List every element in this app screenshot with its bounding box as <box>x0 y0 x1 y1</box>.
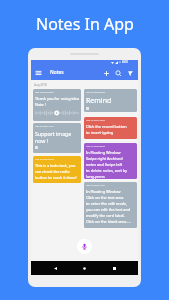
staticText: Notes <box>50 69 64 76</box>
button[interactable]: Menu <box>34 68 43 77</box>
staticText: Aug 2018 <box>34 83 47 87</box>
button[interactable]: Aug 27 2018 09:44 <box>33 156 81 183</box>
staticText: Aug 26 2018 17:31 <box>86 184 105 187</box>
staticText: In Floating Window Swipe right Archived … <box>86 150 127 179</box>
staticText: 8:00 <box>122 60 128 64</box>
button[interactable]: Aug 27 2018 08:00 <box>84 143 137 179</box>
staticText: Notes In App <box>36 13 134 35</box>
button[interactable]: Aug 28 2018 18:09 <box>84 117 137 139</box>
button[interactable]: Back <box>50 263 61 274</box>
button[interactable]: Aug 26 2018 17:31 <box>84 182 137 228</box>
staticText: Aug 29 2018 22:00 <box>86 91 105 94</box>
staticText: Aug 27 2018 08:00 <box>86 145 105 148</box>
button[interactable]: Record voice note <box>77 239 92 254</box>
staticText: In Floating Window Click on the text are… <box>86 189 131 224</box>
staticText: Remind <box>86 96 112 106</box>
button[interactable]: Home <box>79 263 90 274</box>
staticText: Thank you for using idea Note ! <box>35 96 80 107</box>
staticText: Aug 30 2018 08:01 <box>35 91 54 94</box>
staticText: Click the record button to insert typing <box>86 124 127 135</box>
button[interactable]: Recents <box>109 263 120 274</box>
staticText: Aug 28 2018 11:21 <box>35 125 54 128</box>
button[interactable]: Aug 28 2018 11:21 <box>33 123 81 153</box>
button[interactable]: Add note <box>102 69 111 78</box>
button[interactable]: Sort <box>126 69 135 78</box>
staticText: Aug 27 2018 09:44 <box>35 158 54 161</box>
staticText: Aug 28 2018 18:09 <box>86 119 105 122</box>
staticText: This is a todo task, you can check the r… <box>35 163 77 180</box>
button[interactable]: Aug 30 2018 08:01 <box>33 89 81 121</box>
staticText: Support image now ! <box>35 130 72 144</box>
button[interactable]: Search <box>114 69 123 78</box>
button[interactable]: Aug 29 2018 22:00 <box>84 89 137 112</box>
